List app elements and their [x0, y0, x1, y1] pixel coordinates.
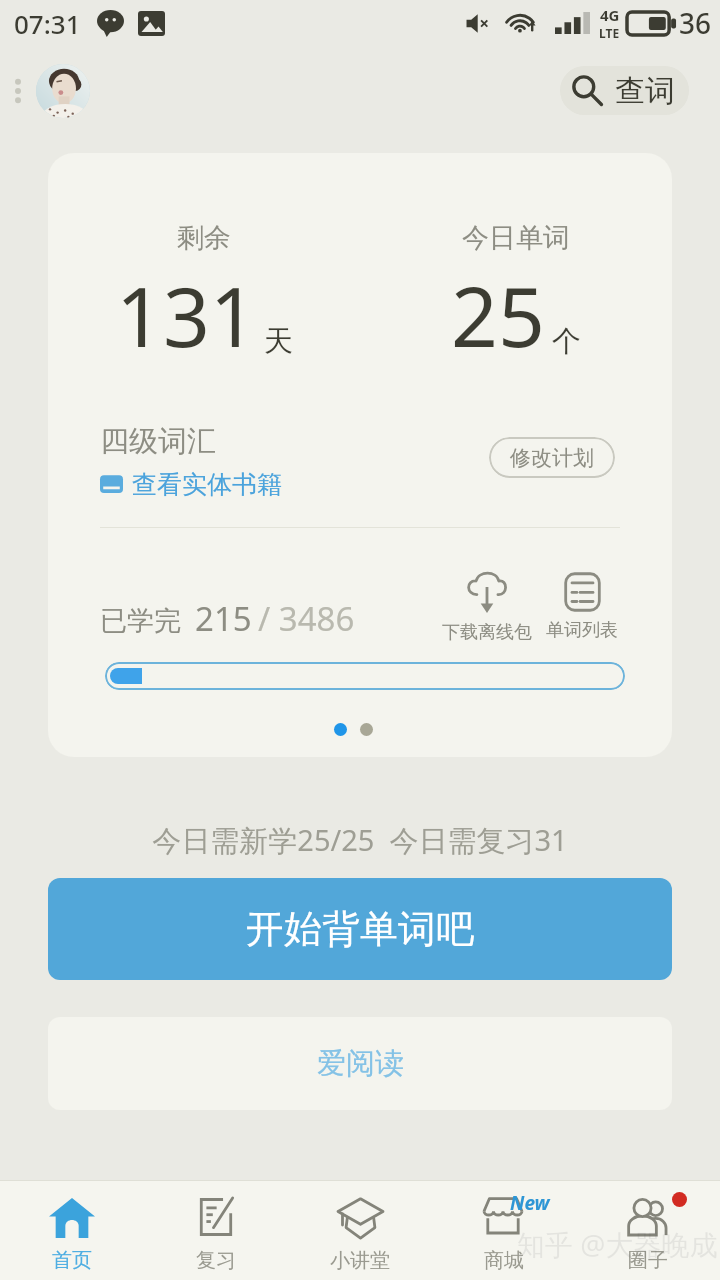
staticText: 131 — [116, 259, 257, 371]
staticText: 下载离线包 — [442, 621, 532, 644]
button[interactable]: New — [432, 1181, 576, 1280]
staticText: 修改计划 — [510, 445, 594, 471]
staticText: 首页 — [52, 1248, 92, 1273]
staticText: 07:31 — [14, 6, 81, 41]
staticText: 圈子 — [628, 1248, 668, 1273]
staticText: 36 — [679, 4, 712, 42]
button[interactable]: 小讲堂 — [288, 1181, 432, 1280]
staticText: 商城 — [484, 1248, 524, 1273]
staticText: 个 — [552, 323, 581, 360]
staticText: 已学完 — [100, 604, 181, 638]
staticText: 复习 — [196, 1248, 236, 1273]
staticText: 4G — [600, 5, 620, 25]
other: More options — [15, 80, 21, 102]
staticText: 知乎 @大器晚成 — [517, 1225, 718, 1263]
button[interactable]: 复习 — [144, 1181, 288, 1280]
staticText: 开始背单词吧 — [246, 905, 474, 953]
staticText: 215 — [195, 596, 252, 641]
staticText: 天 — [264, 323, 293, 360]
staticText: 查词 — [615, 72, 675, 110]
staticText: 四级词汇 — [100, 423, 216, 460]
staticText: 今日单词 — [462, 221, 570, 255]
staticText: / 3486 — [258, 596, 355, 641]
staticText: 25 — [451, 259, 545, 371]
button[interactable]: Profile — [36, 64, 90, 118]
button[interactable]: 修改计划 — [489, 437, 615, 478]
button[interactable]: 查词 — [560, 66, 689, 115]
button[interactable]: 下载离线包 — [442, 573, 532, 644]
staticText: LTE — [599, 25, 620, 41]
staticText: 单词列表 — [546, 619, 618, 642]
button[interactable]: 圈子 — [576, 1181, 720, 1280]
staticText: 爱阅读 — [317, 1045, 404, 1082]
staticText: 今日需新学25/25 今日需复习31 — [0, 820, 720, 860]
staticText: 小讲堂 — [330, 1248, 390, 1273]
button[interactable]: 首页 — [0, 1181, 144, 1280]
staticText: New — [510, 1190, 550, 1216]
button[interactable]: 单词列表 — [546, 573, 618, 642]
button[interactable]: 爱阅读 — [48, 1017, 672, 1110]
button[interactable]: 查看实体书籍 — [100, 469, 282, 500]
staticText: 查看实体书籍 — [132, 469, 282, 500]
staticText: 剩余 — [177, 221, 231, 255]
button[interactable]: 开始背单词吧 — [48, 878, 672, 980]
